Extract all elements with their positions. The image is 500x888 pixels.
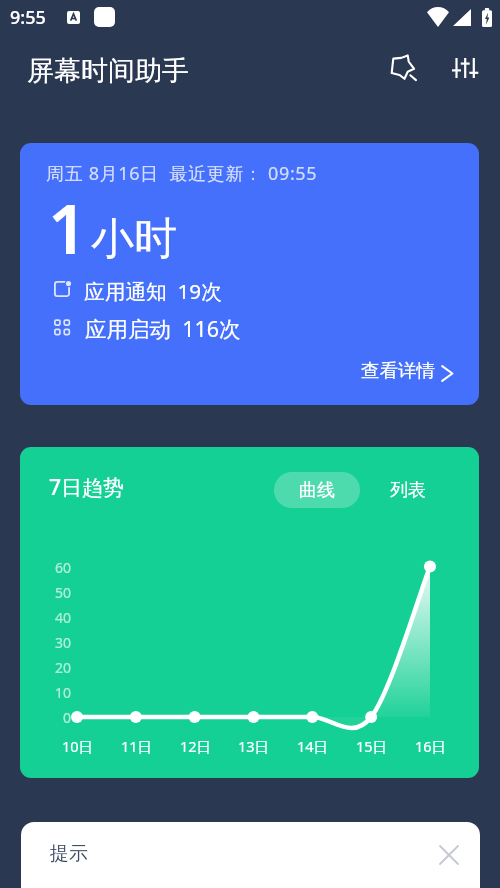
staticText: 7日趋势 (49, 473, 125, 502)
staticText: 0 (63, 708, 72, 727)
staticText: 应用通知 19次 (84, 277, 222, 305)
staticText: 9:55 (10, 5, 46, 30)
staticText: 60 (55, 558, 72, 577)
button[interactable]: Magic wand (380, 46, 424, 90)
staticText: 20 (55, 658, 72, 677)
staticText: 12日 (180, 736, 212, 756)
staticText: 10日 (62, 736, 94, 756)
button[interactable]: 列表 (372, 472, 444, 508)
staticText: 16日 (415, 736, 447, 756)
button[interactable]: Close (427, 833, 471, 877)
staticText: 提示 (50, 842, 88, 866)
staticText: 50 (55, 583, 72, 602)
button[interactable]: 曲线 (274, 472, 360, 508)
staticText: 30 (55, 633, 72, 652)
staticText: 14日 (297, 736, 329, 756)
staticText: 列表 (390, 479, 426, 502)
staticText: 1 (48, 181, 87, 274)
button[interactable]: 查看详情 (355, 351, 459, 390)
staticText: 周五 8月16日 最近更新： 09:55 (46, 161, 318, 186)
staticText: 40 (55, 608, 72, 627)
staticText: 应用启动 116次 (85, 314, 241, 343)
staticText: 曲线 (299, 479, 335, 502)
button[interactable]: Settings (443, 46, 487, 90)
staticText: 13日 (238, 736, 270, 756)
staticText: 小时 (91, 212, 177, 266)
staticText: 屏幕时间助手 (27, 54, 189, 88)
staticText: 10 (55, 683, 72, 702)
staticText: 查看详情 (361, 359, 435, 382)
staticText: 15日 (356, 736, 388, 756)
staticText: 11日 (121, 736, 153, 756)
button[interactable]: 周五 8月16日 最近更新： 09:55 (20, 143, 479, 405)
